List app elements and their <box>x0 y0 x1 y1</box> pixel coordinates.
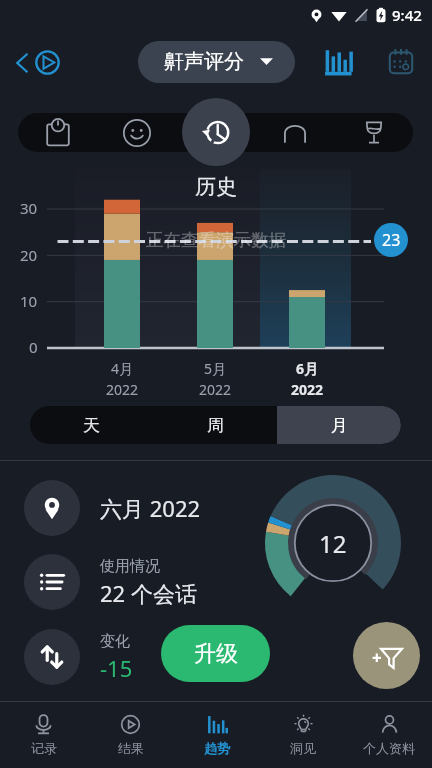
button[interactable]: Mouthguard <box>255 113 334 152</box>
staticText: 5月 <box>204 359 227 378</box>
staticText: 0 <box>29 337 38 357</box>
staticText: 30 <box>20 198 38 218</box>
other: Sessions <box>24 554 80 610</box>
button[interactable]: 鼾声评分 <box>138 41 295 83</box>
staticText: 六月 2022 <box>100 493 201 523</box>
staticText: 4月 <box>111 359 134 378</box>
staticText: 23 <box>382 229 401 251</box>
staticText: 6月 <box>296 359 319 378</box>
staticText: 2022 <box>106 380 139 399</box>
button[interactable]: 周 <box>153 406 277 444</box>
staticText: 记录 <box>31 740 57 756</box>
button[interactable]: Charts <box>314 39 360 85</box>
button[interactable]: Alcohol <box>334 113 413 152</box>
button[interactable]: 趋势 <box>174 702 260 768</box>
staticText: 周 <box>207 415 224 436</box>
staticText: 22 个会话 <box>100 578 197 608</box>
button[interactable]: Back <box>12 44 64 81</box>
staticText: 升级 <box>194 640 238 668</box>
button[interactable]: Sessions <box>24 552 197 612</box>
staticText: 20 <box>20 245 38 265</box>
staticText: 结果 <box>118 740 144 756</box>
button[interactable]: Change <box>24 627 133 687</box>
button[interactable]: Mood <box>97 113 176 152</box>
staticText: 变化 <box>100 632 130 651</box>
button[interactable]: 记录 <box>0 702 87 768</box>
button[interactable]: 洞见 <box>260 702 346 768</box>
button[interactable]: History <box>182 98 250 166</box>
staticText: 趋势 <box>204 740 230 756</box>
button[interactable]: 天 <box>30 406 153 444</box>
button[interactable]: 结果 <box>87 702 174 768</box>
staticText: 12 <box>319 527 347 560</box>
staticText: 天 <box>83 415 100 436</box>
staticText: 9:42 <box>392 5 422 25</box>
staticText: 2022 <box>199 380 232 399</box>
button[interactable]: 个人资料 <box>346 702 432 768</box>
other: Change <box>24 629 80 685</box>
staticText: 使用情况 <box>100 557 160 576</box>
staticText: 个人资料 <box>363 740 415 756</box>
button[interactable]: 升级 <box>161 625 270 682</box>
staticText: 正在查看演示数据 <box>146 229 286 251</box>
other: Location <box>24 480 80 536</box>
staticText: 月 <box>331 415 348 436</box>
staticText: 历史 <box>195 174 237 200</box>
staticText: 10 <box>20 291 38 311</box>
staticText: -15 <box>100 653 133 683</box>
staticText: 鼾声评分 <box>164 49 244 74</box>
button[interactable]: 月 <box>277 406 401 444</box>
staticText: 2022 <box>291 380 324 399</box>
button[interactable]: Location <box>24 478 201 538</box>
button[interactable]: Add filter <box>353 622 420 689</box>
button[interactable]: Calendar <box>378 39 424 85</box>
button[interactable]: Weight <box>18 113 97 152</box>
staticText: 洞见 <box>290 740 316 756</box>
